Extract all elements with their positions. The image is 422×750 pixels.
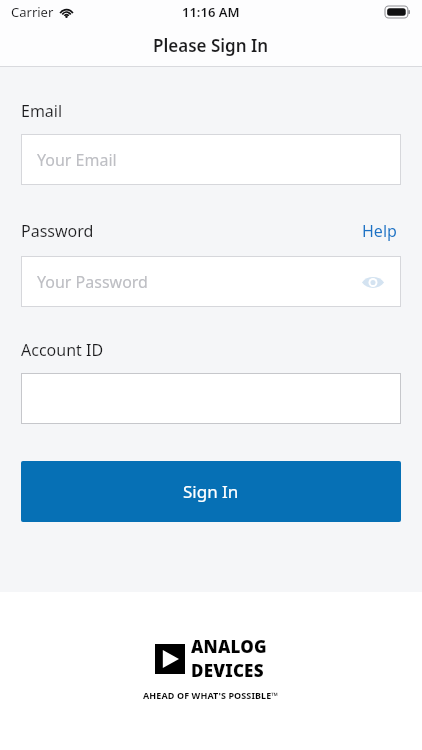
staticText: Your Password xyxy=(37,271,148,293)
staticText: DEVICES xyxy=(191,659,264,682)
button[interactable]: Your Password xyxy=(21,256,401,307)
staticText: Your Email xyxy=(37,149,117,171)
staticText: Password xyxy=(21,220,94,242)
button[interactable] xyxy=(21,373,401,424)
button[interactable]: Sign In xyxy=(21,461,401,522)
staticText: Email xyxy=(21,100,63,122)
staticText: Sign In xyxy=(183,480,239,503)
staticText: Help xyxy=(362,220,397,242)
staticText: Please Sign In xyxy=(153,34,269,57)
button[interactable]: Help xyxy=(358,218,401,244)
staticText: AHEAD OF WHAT'S POSSIBLE™ xyxy=(143,689,279,701)
button[interactable]: Show password xyxy=(358,267,388,297)
staticText: Carrier xyxy=(11,3,54,21)
staticText: 11:16 AM xyxy=(182,3,240,21)
button[interactable]: Your Email xyxy=(21,134,401,185)
staticText: Account ID xyxy=(21,339,104,361)
staticText: ANALOG xyxy=(191,635,267,658)
